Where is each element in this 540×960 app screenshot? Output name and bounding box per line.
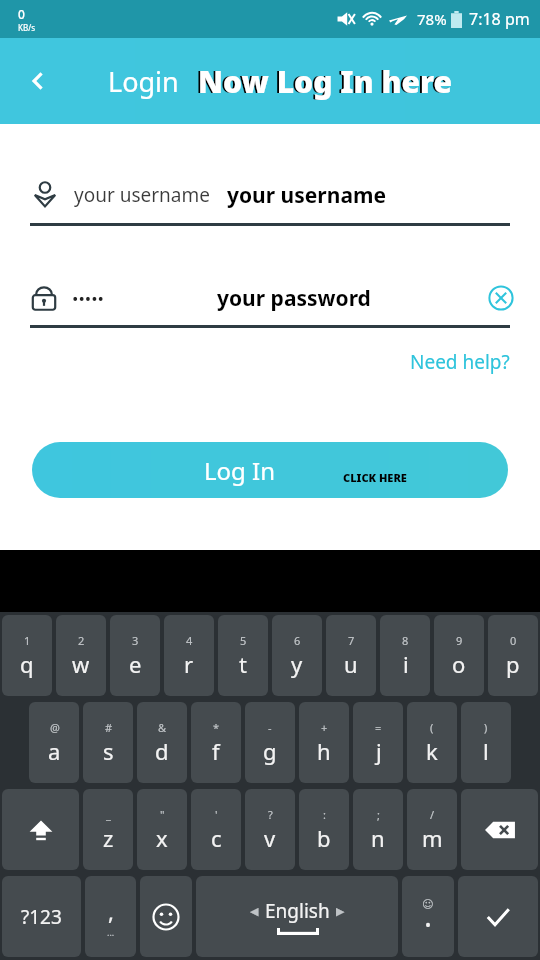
button[interactable]: & <box>137 702 187 783</box>
button[interactable]: " <box>137 789 187 870</box>
staticText: w <box>72 649 90 679</box>
button[interactable]: + <box>299 702 349 783</box>
staticText: v <box>264 823 276 853</box>
button[interactable]: : <box>299 789 349 870</box>
staticText: # <box>105 720 113 735</box>
staticText: o <box>452 649 466 679</box>
staticText: 3 <box>132 633 139 648</box>
button[interactable]: / <box>407 789 457 870</box>
staticText: q <box>20 649 34 679</box>
button[interactable]: Backspace <box>461 789 538 870</box>
staticText: x <box>156 823 168 853</box>
staticText: 1 <box>24 633 31 648</box>
staticText: 8 <box>402 633 409 648</box>
staticText: 6 <box>294 633 301 648</box>
staticText: & <box>158 720 167 735</box>
staticText: y <box>291 649 303 679</box>
staticText: f <box>212 736 220 766</box>
other: Enter <box>483 902 513 932</box>
button[interactable]: 7 <box>326 615 376 696</box>
button[interactable]: Period <box>402 876 454 957</box>
staticText: ◀ <box>250 905 259 918</box>
other: Backspace <box>483 818 517 842</box>
button[interactable]: Need help? <box>410 349 510 375</box>
staticText: ☺ <box>422 898 434 911</box>
staticText: 7:18 pm <box>469 8 530 30</box>
staticText: Log In <box>204 454 276 487</box>
button[interactable]: 2 <box>56 615 106 696</box>
button[interactable]: _ <box>83 789 133 870</box>
button[interactable]: 3 <box>110 615 160 696</box>
button[interactable]: ' <box>191 789 241 870</box>
button[interactable]: 6 <box>272 615 322 696</box>
button[interactable]: ( <box>407 702 457 783</box>
staticText: Need help? <box>410 349 510 375</box>
staticText: g <box>263 736 277 766</box>
button[interactable]: 5 <box>218 615 268 696</box>
staticText: " <box>160 807 165 822</box>
staticText: ▶ <box>336 905 345 918</box>
staticText: • <box>425 914 432 936</box>
staticText: KB/s <box>18 22 35 33</box>
staticText: d <box>155 736 169 766</box>
staticText: 2 <box>78 633 85 648</box>
staticText: ••••• <box>72 287 104 310</box>
button[interactable]: Log In <box>32 442 508 498</box>
staticText: 78% <box>417 9 447 29</box>
button[interactable]: Back <box>14 57 62 105</box>
staticText: i <box>403 649 409 679</box>
staticText: r <box>184 649 194 679</box>
button[interactable]: your username <box>30 166 510 224</box>
staticText: c <box>211 823 222 853</box>
button[interactable]: 0 <box>488 615 538 696</box>
button[interactable]: ; <box>353 789 403 870</box>
button[interactable]: = <box>353 702 403 783</box>
staticText: , <box>108 896 114 926</box>
button[interactable]: Emoji <box>140 876 192 957</box>
staticText: p <box>506 649 520 679</box>
staticText: n <box>371 823 385 853</box>
button[interactable]: # <box>83 702 133 783</box>
button[interactable]: Shift <box>2 789 79 870</box>
staticText: - <box>268 720 272 735</box>
button[interactable]: Enter <box>458 876 538 957</box>
button[interactable]: 9 <box>434 615 484 696</box>
button[interactable]: ••••• <box>30 269 518 327</box>
button[interactable]: Clear password <box>484 281 518 315</box>
button[interactable]: ?123 <box>2 876 81 957</box>
staticText: 0 <box>510 633 517 648</box>
button[interactable]: Comma <box>85 876 136 957</box>
staticText: h <box>317 736 331 766</box>
staticText: 0 <box>18 6 25 22</box>
staticText: a <box>48 736 61 766</box>
staticText: 4 <box>186 633 193 648</box>
staticText: ( <box>430 720 434 735</box>
staticText: : <box>323 807 326 822</box>
staticText: Now Log In here <box>198 61 453 102</box>
button[interactable]: 4 <box>164 615 214 696</box>
staticText: @ <box>50 720 60 735</box>
button[interactable]: * <box>191 702 241 783</box>
staticText: Now Log In here <box>196 61 451 102</box>
staticText: _ <box>106 807 111 822</box>
button[interactable]: Space <box>196 876 398 957</box>
button[interactable]: 1 <box>2 615 52 696</box>
staticText: ?123 <box>21 904 62 930</box>
staticText: 9 <box>456 633 463 648</box>
button[interactable]: - <box>245 702 295 783</box>
staticText: b <box>317 823 331 853</box>
other: Comma <box>107 896 115 938</box>
staticText: z <box>103 823 114 853</box>
staticText: e <box>129 649 142 679</box>
button[interactable]: 8 <box>380 615 430 696</box>
staticText: + <box>321 720 328 735</box>
staticText: s <box>103 736 114 766</box>
staticText: CLICK HERE <box>343 470 407 485</box>
staticText: m <box>422 823 443 853</box>
button[interactable]: ) <box>461 702 511 783</box>
staticText: * <box>213 720 220 735</box>
staticText: l <box>483 736 489 766</box>
staticText: 5 <box>240 633 247 648</box>
button[interactable]: @ <box>29 702 79 783</box>
button[interactable]: ? <box>245 789 295 870</box>
